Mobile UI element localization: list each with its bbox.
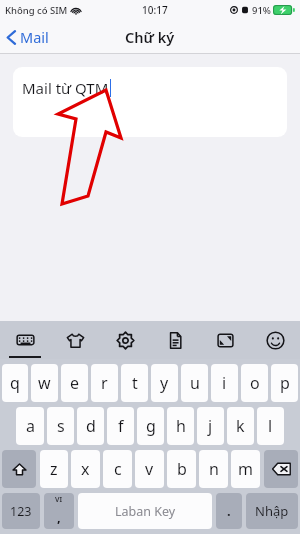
staticText: Mail từ QTM <box>22 78 109 98</box>
button[interactable]: z <box>40 450 68 488</box>
staticText: 123 <box>10 503 32 520</box>
button[interactable]: f <box>107 407 134 445</box>
button[interactable]: Keyboard <box>0 321 50 359</box>
staticText: m <box>238 458 253 480</box>
button[interactable]: e <box>61 364 88 402</box>
staticText: r <box>101 372 108 394</box>
button[interactable]: i <box>211 364 238 402</box>
staticText: y <box>160 372 169 394</box>
staticText: g <box>146 415 156 437</box>
staticText: f <box>118 415 124 437</box>
button[interactable]: Backspace <box>264 450 298 488</box>
staticText: v <box>145 458 154 480</box>
button[interactable]: a <box>16 407 44 445</box>
button[interactable]: q <box>2 364 28 402</box>
staticText: b <box>177 458 187 480</box>
staticText: Laban Key <box>115 503 176 520</box>
button[interactable]: Themes <box>50 321 100 359</box>
staticText: w <box>38 372 51 394</box>
button[interactable]: Clipboard <box>150 321 200 359</box>
button[interactable]: c <box>103 450 132 488</box>
staticText: Chữ ký <box>125 27 175 47</box>
staticText: k <box>236 415 245 437</box>
button[interactable]: n <box>199 450 228 488</box>
button[interactable]: h <box>167 407 194 445</box>
staticText: j <box>208 415 213 437</box>
button[interactable]: Laban Key <box>78 493 212 529</box>
button[interactable]: Nhập <box>246 493 298 529</box>
button[interactable]: g <box>137 407 164 445</box>
button[interactable]: k <box>227 407 254 445</box>
staticText: u <box>190 372 200 394</box>
staticText: Mail <box>20 27 49 47</box>
button[interactable]: l <box>257 407 284 445</box>
button[interactable]: Stickers <box>200 321 250 359</box>
staticText: l <box>268 415 273 437</box>
staticText: p <box>280 372 290 394</box>
button[interactable]: o <box>241 364 268 402</box>
staticText: e <box>70 372 80 394</box>
button[interactable]: t <box>121 364 148 402</box>
button[interactable]: Settings <box>100 321 150 359</box>
button[interactable]: Vietnamese comma <box>44 493 74 529</box>
staticText: z <box>50 458 58 480</box>
button[interactable]: Mail từ QTM <box>13 67 287 137</box>
button[interactable]: v <box>135 450 164 488</box>
button[interactable]: Shift <box>2 450 36 488</box>
staticText: 10:17 <box>142 3 168 17</box>
button[interactable]: Mail <box>0 22 57 52</box>
staticText: , <box>57 508 61 526</box>
staticText: Không có SIM <box>5 4 68 17</box>
button[interactable]: d <box>77 407 104 445</box>
button[interactable]: Period <box>216 493 242 529</box>
staticText: s <box>57 415 65 437</box>
staticText: VI <box>55 495 63 505</box>
button[interactable]: s <box>47 407 74 445</box>
button[interactable]: w <box>31 364 58 402</box>
staticText: t <box>132 372 138 394</box>
button[interactable]: 123 <box>2 493 40 529</box>
staticText: q <box>10 372 20 394</box>
staticText: c <box>114 458 122 480</box>
button[interactable]: u <box>181 364 208 402</box>
button[interactable]: r <box>91 364 118 402</box>
button[interactable]: m <box>231 450 260 488</box>
staticText: h <box>176 415 186 437</box>
button[interactable]: Emoji <box>250 321 300 359</box>
staticText: 91% <box>252 4 271 17</box>
button[interactable]: b <box>167 450 196 488</box>
staticText: x <box>81 458 90 480</box>
staticText: d <box>86 415 96 437</box>
staticText: o <box>250 372 260 394</box>
staticText: Nhập <box>255 502 289 520</box>
button[interactable]: p <box>271 364 298 402</box>
staticText: n <box>209 458 219 480</box>
staticText: i <box>222 372 227 394</box>
button[interactable]: x <box>71 450 100 488</box>
button[interactable]: y <box>151 364 178 402</box>
staticText: a <box>26 415 35 437</box>
button[interactable]: j <box>197 407 224 445</box>
staticText: . <box>227 502 231 520</box>
